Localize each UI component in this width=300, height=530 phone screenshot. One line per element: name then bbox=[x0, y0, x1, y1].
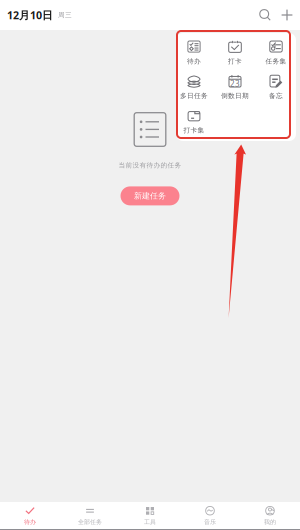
staticText: 当前没有待办的任务 bbox=[118, 161, 181, 169]
button[interactable]: 我的 bbox=[240, 502, 300, 529]
staticText: 23 bbox=[230, 78, 240, 89]
button[interactable]: 待办 bbox=[173, 40, 214, 66]
button[interactable]: 工具 bbox=[120, 502, 180, 529]
button[interactable]: 新建 bbox=[276, 1, 298, 29]
button[interactable]: 打卡集 bbox=[173, 109, 214, 135]
button[interactable]: 23 bbox=[214, 74, 255, 100]
staticText: 周三 bbox=[58, 11, 72, 19]
button[interactable]: 新建任务 bbox=[120, 186, 179, 205]
staticText: 打卡 bbox=[228, 57, 242, 65]
button[interactable]: 打卡 bbox=[214, 40, 255, 66]
staticText: 倒数日期 bbox=[221, 92, 249, 100]
staticText: 多日任务 bbox=[180, 92, 208, 100]
staticText: 待办 bbox=[24, 518, 36, 526]
staticText: 任务集 bbox=[265, 57, 286, 65]
button[interactable]: 多日任务 bbox=[173, 74, 214, 100]
button[interactable]: 搜索 bbox=[254, 1, 276, 29]
staticText: 工具 bbox=[144, 518, 156, 526]
staticText: 新建任务 bbox=[134, 191, 166, 201]
staticText: 备忘 bbox=[269, 92, 283, 100]
button[interactable]: 待办 bbox=[0, 502, 60, 529]
button[interactable]: 音乐 bbox=[180, 502, 240, 529]
button[interactable]: 全部任务 bbox=[60, 502, 120, 529]
staticText: 全部任务 bbox=[78, 518, 102, 526]
button[interactable]: 备忘 bbox=[255, 74, 296, 100]
button[interactable]: 任务集 bbox=[255, 40, 296, 66]
staticText: 打卡集 bbox=[183, 126, 204, 134]
staticText: 我的 bbox=[264, 518, 276, 526]
staticText: 12月10日 bbox=[7, 8, 53, 22]
staticText: 待办 bbox=[187, 57, 201, 65]
staticText: 音乐 bbox=[204, 518, 216, 526]
